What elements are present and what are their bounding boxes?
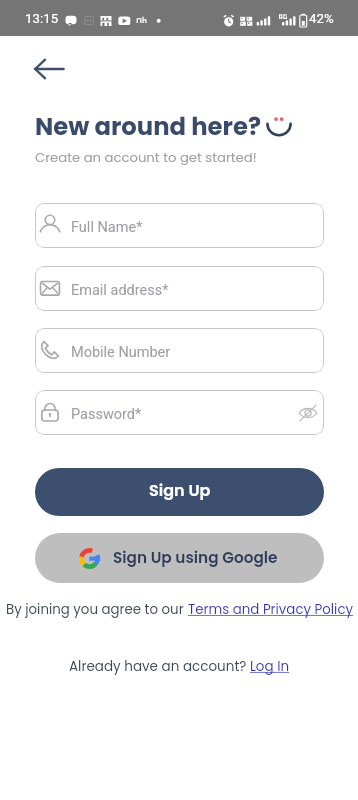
staticText: Sign Up (149, 479, 211, 501)
button[interactable]: Show password (290, 395, 324, 431)
button[interactable]: Sign Up (35, 468, 324, 516)
staticText: Full Name* (71, 219, 143, 236)
button[interactable]: Back (29, 49, 69, 89)
button[interactable]: Full Name* (35, 203, 324, 248)
staticText: Create an account to get started! (35, 148, 257, 166)
button[interactable]: Password* (35, 390, 324, 435)
staticText: 13:15 (25, 11, 59, 27)
button[interactable]: Email address* (35, 266, 324, 311)
staticText: New around here? (35, 109, 261, 143)
button[interactable]: Log In (250, 657, 290, 676)
staticText: Sign Up using Google (113, 547, 278, 568)
button[interactable]: Terms and Privacy Policy (188, 600, 353, 619)
staticText: 42% (309, 11, 334, 27)
staticText: Email address* (71, 282, 169, 299)
staticText: Mobile Number (71, 344, 171, 361)
staticText: Password* (71, 406, 142, 423)
button[interactable]: Mobile Number (35, 328, 324, 373)
staticText: Already have an account? (69, 657, 250, 676)
staticText: By joining you agree to our (6, 600, 188, 619)
button[interactable]: Sign Up using Google (35, 533, 324, 583)
